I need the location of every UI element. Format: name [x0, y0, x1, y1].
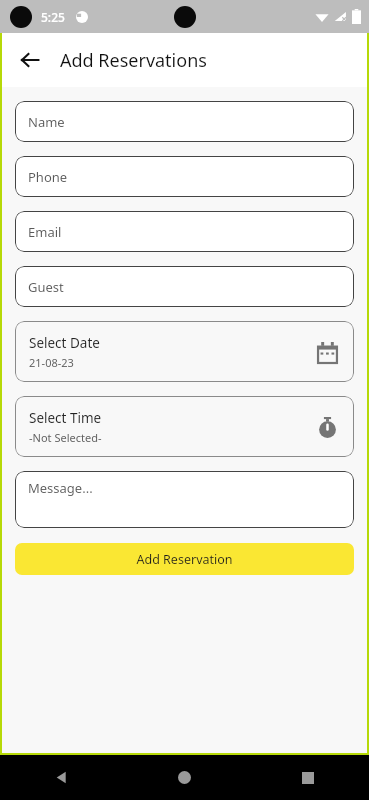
- button[interactable]: Back: [0, 755, 123, 800]
- staticText: Message...: [28, 479, 93, 497]
- button[interactable]: Message...: [15, 471, 354, 528]
- button[interactable]: Back: [10, 40, 50, 80]
- button[interactable]: Recent apps: [246, 755, 369, 800]
- button[interactable]: Phone: [15, 156, 354, 197]
- staticText: 5:25: [41, 9, 65, 25]
- other: Select time: [314, 414, 340, 440]
- button[interactable]: Home: [123, 755, 246, 800]
- staticText: Select Time: [29, 409, 102, 427]
- button[interactable]: Select Time: [15, 396, 354, 457]
- staticText: -Not Selected-: [29, 430, 102, 445]
- staticText: Email: [28, 223, 62, 241]
- button[interactable]: Guest: [15, 266, 354, 307]
- staticText: Phone: [28, 168, 68, 186]
- button[interactable]: Add Reservation: [15, 543, 354, 575]
- button[interactable]: Select Date: [15, 321, 354, 382]
- staticText: Add Reservations: [60, 48, 207, 73]
- staticText: Guest: [28, 278, 64, 296]
- staticText: 21-08-23: [29, 355, 74, 370]
- staticText: Name: [28, 113, 65, 131]
- button[interactable]: Email: [15, 211, 354, 252]
- other: Select date: [314, 339, 340, 365]
- button[interactable]: Name: [15, 101, 354, 142]
- staticText: Add Reservation: [136, 551, 233, 568]
- staticText: Select Date: [29, 334, 100, 352]
